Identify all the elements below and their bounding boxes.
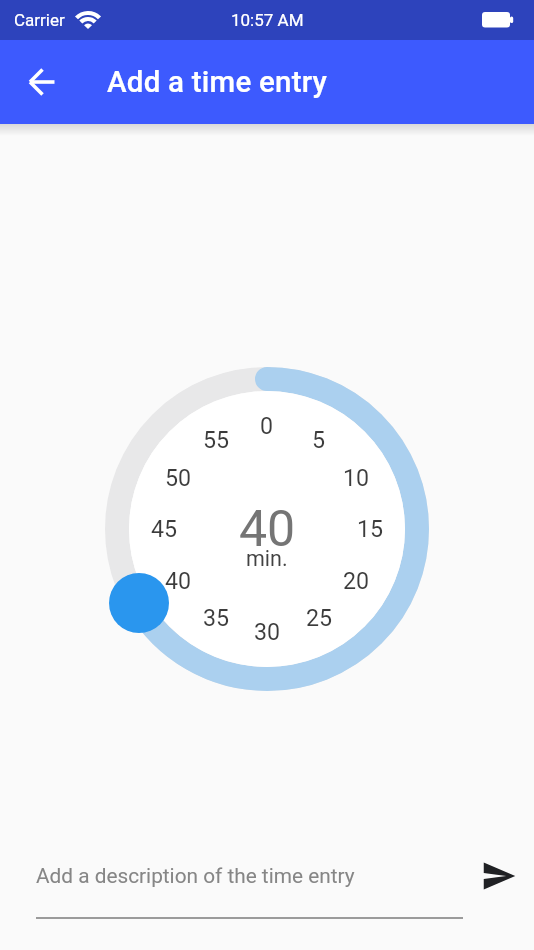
staticText: 15 bbox=[357, 515, 384, 542]
button[interactable] bbox=[18, 58, 66, 106]
staticText: min. bbox=[246, 546, 288, 571]
staticText: 10 bbox=[343, 464, 370, 491]
staticText: 25 bbox=[306, 604, 333, 631]
staticText: 35 bbox=[203, 604, 230, 631]
staticText: 45 bbox=[151, 515, 178, 542]
staticText: 40 bbox=[239, 500, 296, 559]
staticText: 30 bbox=[254, 618, 281, 645]
staticText: 5 bbox=[312, 426, 326, 453]
staticText: Carrier bbox=[14, 10, 65, 30]
button[interactable] bbox=[473, 852, 521, 900]
staticText: 10:57 AM bbox=[231, 10, 304, 30]
staticText: 40 bbox=[165, 567, 192, 594]
staticText: Add a description of the time entry bbox=[36, 864, 355, 888]
staticText: 50 bbox=[165, 464, 192, 491]
button[interactable]: Add a description of the time entry bbox=[30, 845, 465, 920]
staticText: 20 bbox=[343, 567, 370, 594]
staticText: 55 bbox=[203, 426, 230, 453]
staticText: Add a time entry bbox=[107, 65, 328, 100]
staticText: 0 bbox=[260, 412, 274, 439]
